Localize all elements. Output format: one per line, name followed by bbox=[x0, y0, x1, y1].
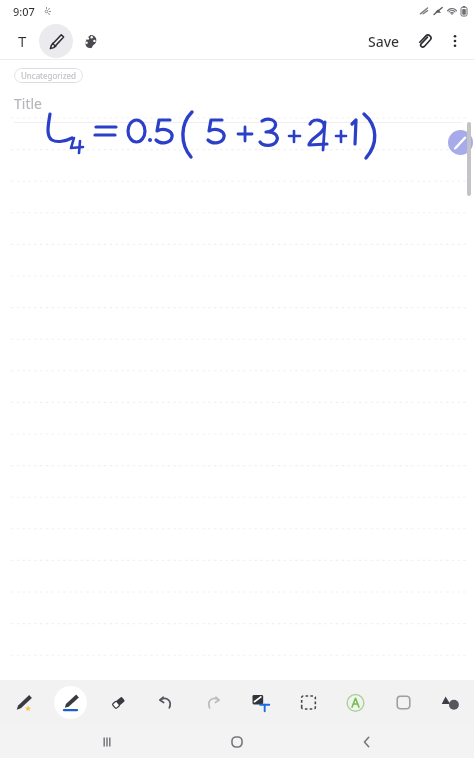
button[interactable]: Redo bbox=[197, 686, 230, 719]
button[interactable]: Save bbox=[361, 26, 407, 57]
button[interactable]: Shapes bbox=[434, 686, 467, 719]
button[interactable]: Highlighter bbox=[54, 686, 87, 719]
button[interactable]: Uncategorized bbox=[14, 68, 83, 83]
button[interactable]: Canvas bbox=[387, 686, 420, 719]
button[interactable]: Text mode bbox=[5, 24, 39, 58]
staticText: Uncategorized bbox=[21, 70, 76, 81]
button[interactable]: Undo bbox=[149, 686, 182, 719]
staticText: Save bbox=[368, 32, 400, 51]
button[interactable]: Eraser bbox=[102, 686, 135, 719]
button[interactable]: Auto shape bbox=[339, 686, 372, 719]
button[interactable]: Colour palette bbox=[73, 24, 107, 58]
button[interactable]: Home bbox=[214, 725, 260, 758]
button[interactable]: More options bbox=[441, 27, 469, 55]
button[interactable]: Selection bbox=[292, 686, 325, 719]
staticText: 9:07 bbox=[13, 4, 35, 19]
button[interactable]: Attach file bbox=[407, 24, 441, 58]
button[interactable]: Handwriting pen bbox=[448, 130, 473, 155]
button[interactable]: Favourite pen bbox=[7, 686, 40, 719]
staticText: Title bbox=[14, 94, 42, 113]
staticText: T bbox=[18, 31, 27, 51]
button[interactable]: Back bbox=[344, 725, 390, 758]
button[interactable]: Pen mode bbox=[39, 24, 73, 58]
button[interactable]: Recent apps bbox=[84, 725, 130, 758]
button[interactable]: Convert to text bbox=[244, 686, 277, 719]
